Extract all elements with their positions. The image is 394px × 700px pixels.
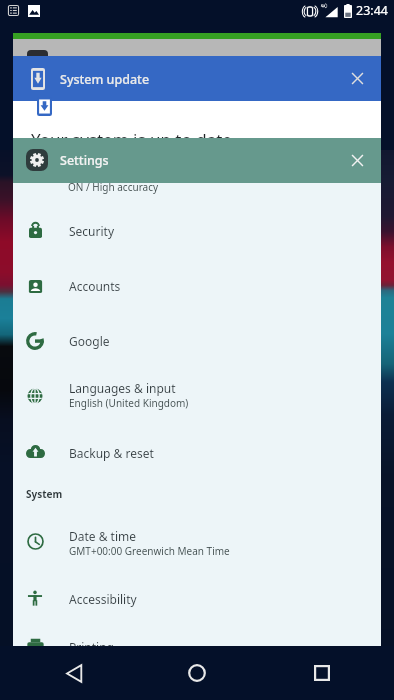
button[interactable] [13,259,381,314]
staticText: Settings [60,152,109,169]
staticText: ON / High accuracy [68,180,159,194]
button[interactable]: Dismiss system update [339,56,376,101]
button[interactable]: Close settings [339,138,376,183]
button[interactable] [13,369,381,424]
button[interactable]: Home [175,646,219,700]
button[interactable] [13,424,381,479]
button[interactable] [13,203,381,258]
staticText: Your system is up to date [31,128,232,151]
staticText: Accounts [69,278,121,294]
button[interactable]: Back [52,646,96,700]
button[interactable]: Settings [13,138,381,183]
staticText: System update [60,71,150,88]
button[interactable] [13,618,381,647]
button[interactable]: Recent apps [300,646,344,700]
staticText: Accessibility [69,591,137,607]
staticText: Security [69,223,115,239]
staticText: Backup & reset [69,445,154,461]
button[interactable]: System update [13,56,381,101]
staticText: Google [69,333,110,349]
staticText: English (United Kingdom) [69,396,189,410]
button[interactable] [13,314,381,369]
staticText: Printing [69,639,114,647]
button[interactable] [13,571,381,626]
staticText: System [26,487,63,501]
staticText: GMT+00:00 Greenwich Mean Time [69,544,230,558]
staticText: 23:44 [356,2,388,19]
button[interactable] [13,514,381,569]
staticText: Date & time [69,528,137,544]
staticText: Languages & input [69,380,176,396]
